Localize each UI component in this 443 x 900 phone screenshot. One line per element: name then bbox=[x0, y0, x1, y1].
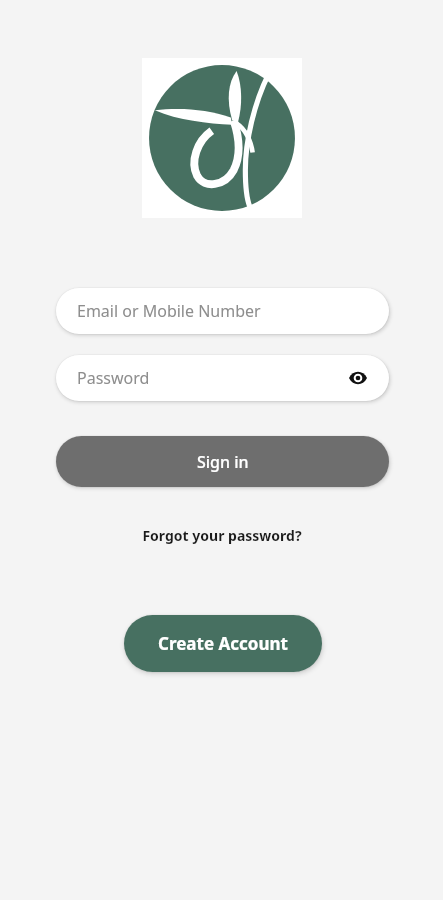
staticText: Forgot your password? bbox=[142, 526, 302, 545]
button[interactable]: Forgot your password? bbox=[132, 522, 312, 549]
button[interactable]: Create Account bbox=[124, 615, 322, 672]
button[interactable]: Password bbox=[56, 355, 389, 401]
button[interactable]: Show password bbox=[345, 365, 371, 391]
button[interactable]: Email or Mobile Number bbox=[56, 288, 389, 334]
staticText: Create Account bbox=[158, 632, 288, 655]
staticText: Password bbox=[77, 367, 150, 389]
staticText: Sign in bbox=[197, 451, 249, 473]
button[interactable]: Sign in bbox=[56, 436, 389, 487]
staticText: Email or Mobile Number bbox=[77, 300, 261, 322]
